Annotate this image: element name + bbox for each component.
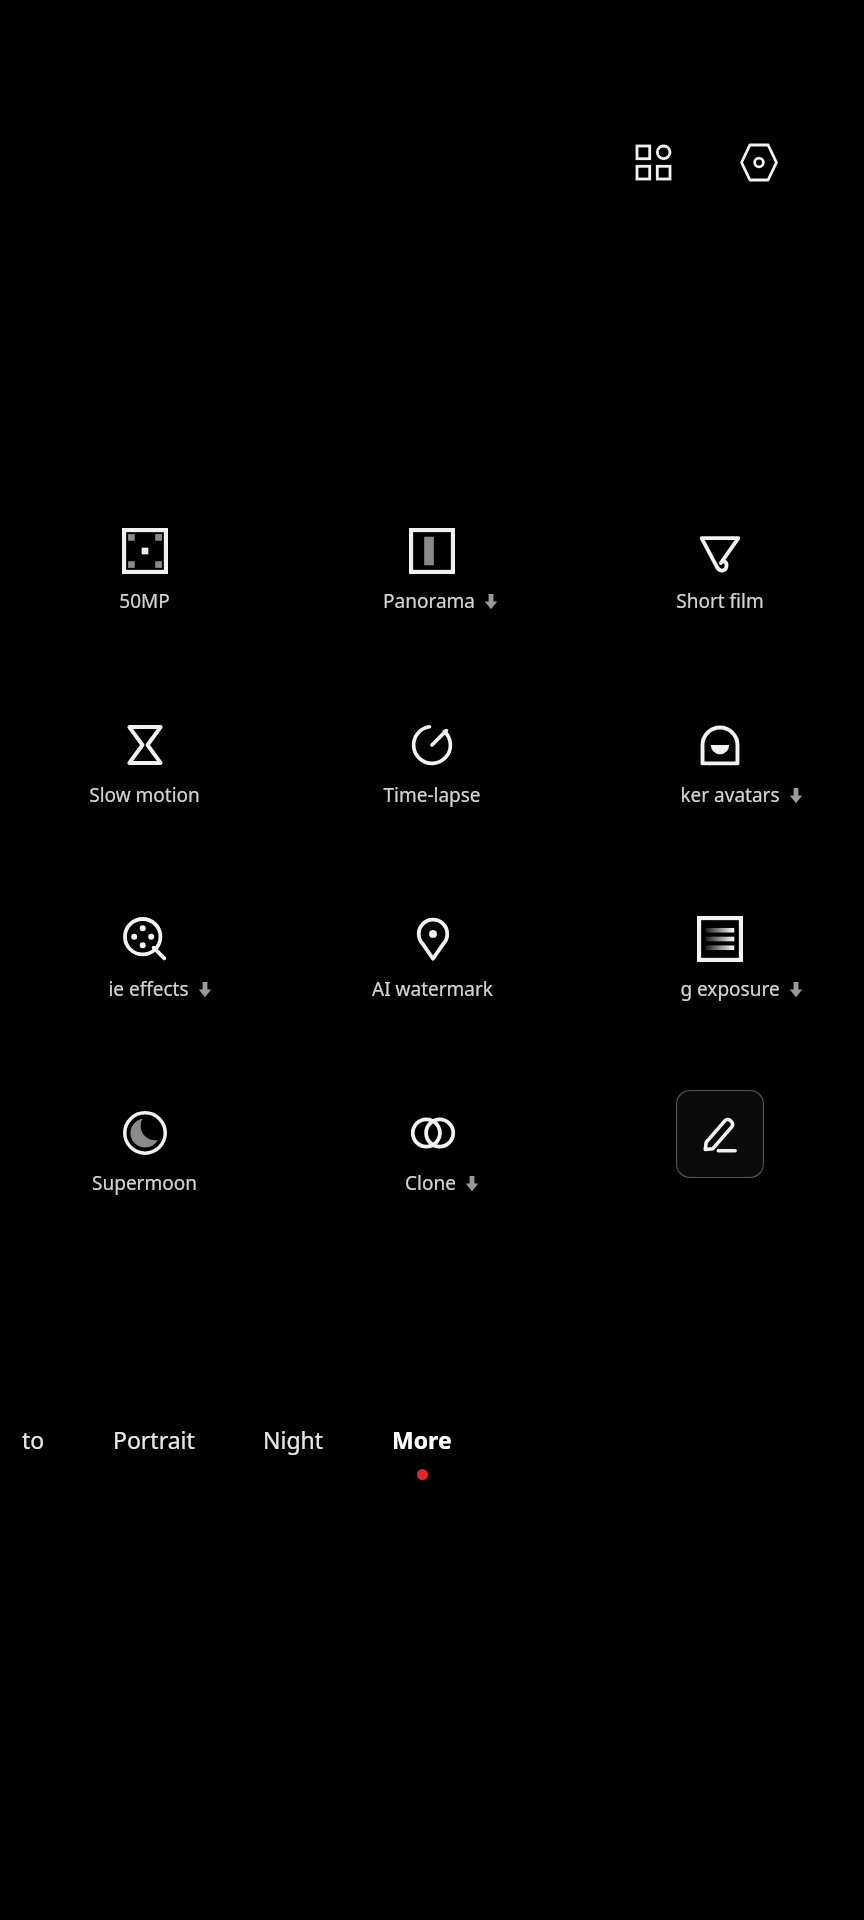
button[interactable]: Short film (676, 528, 764, 614)
button[interactable]: Time-lapse (383, 722, 481, 808)
staticText: More (392, 1424, 452, 1455)
button[interactable]: Slow motion (89, 722, 200, 808)
button[interactable]: Supermoon (92, 1110, 197, 1196)
button[interactable]: ie effects (92, 916, 197, 1002)
button[interactable]: More (392, 1424, 452, 1480)
staticText: 50MP (119, 588, 170, 614)
staticText: Slow motion (89, 782, 200, 808)
staticText: Short film (676, 588, 764, 614)
button[interactable]: Portrait (113, 1424, 195, 1455)
staticText: ker avatars (680, 782, 780, 808)
button[interactable]: AI watermark (372, 916, 493, 1002)
button[interactable]: Edit modes (676, 1090, 764, 1178)
staticText: to (22, 1424, 45, 1455)
button[interactable]: Clone (395, 1110, 470, 1196)
staticText: Night (263, 1424, 324, 1455)
staticText: Portrait (113, 1424, 195, 1455)
button[interactable]: Modes grid (626, 135, 680, 189)
staticText: Time-lapse (383, 782, 481, 808)
button[interactable]: 50MP (119, 528, 170, 614)
staticText: Panorama (383, 588, 475, 614)
button[interactable]: Settings (732, 135, 786, 189)
button[interactable]: to (22, 1424, 45, 1455)
staticText: g exposure (680, 976, 780, 1002)
staticText: AI watermark (372, 976, 493, 1002)
staticText: Clone (405, 1170, 456, 1196)
staticText: ie effects (108, 976, 189, 1002)
button[interactable]: Panorama (374, 528, 490, 614)
button[interactable]: Night (263, 1424, 324, 1455)
button[interactable]: g exposure (658, 916, 782, 1002)
button[interactable]: ker avatars (658, 722, 782, 808)
staticText: Supermoon (92, 1170, 197, 1196)
